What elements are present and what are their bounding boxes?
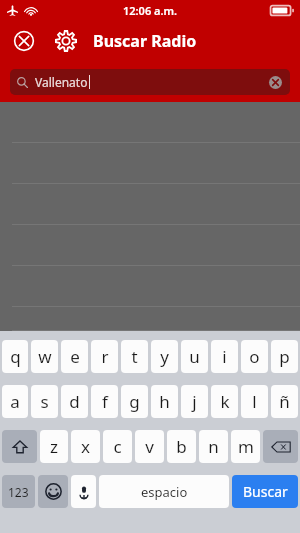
staticText: Buscar Radio — [93, 30, 197, 52]
button[interactable]: f — [91, 385, 118, 418]
staticText: s — [40, 390, 49, 413]
staticText: t — [131, 345, 138, 368]
button[interactable]: Dictation — [71, 475, 96, 508]
button[interactable]: o — [241, 340, 268, 373]
staticText: Buscar — [243, 482, 288, 501]
button[interactable]: m — [231, 430, 260, 463]
button[interactable]: Buscar — [232, 475, 298, 508]
button[interactable] — [0, 307, 300, 331]
staticText: m — [238, 435, 254, 458]
button[interactable]: Settings — [50, 25, 82, 57]
button[interactable]: Shift — [2, 430, 37, 463]
button[interactable]: z — [40, 430, 68, 463]
staticText: q — [10, 345, 21, 368]
staticText: 123 — [8, 484, 29, 500]
button[interactable]: Backspace — [263, 430, 298, 463]
button[interactable]: v — [135, 430, 164, 463]
staticText: p — [279, 345, 290, 368]
staticText: r — [101, 345, 109, 368]
button[interactable]: g — [121, 385, 148, 418]
staticText: k — [220, 390, 230, 413]
staticText: o — [249, 345, 260, 368]
staticText: ñ — [279, 390, 290, 413]
staticText: l — [252, 390, 257, 413]
staticText: h — [159, 390, 170, 413]
button[interactable]: x — [71, 430, 100, 463]
button[interactable]: p — [271, 340, 298, 373]
button[interactable]: b — [167, 430, 196, 463]
staticText: e — [70, 345, 80, 368]
button[interactable]: k — [211, 385, 238, 418]
staticText: x — [81, 435, 90, 458]
staticText: espacio — [141, 483, 188, 501]
button[interactable]: d — [61, 385, 88, 418]
button[interactable]: q — [2, 340, 28, 373]
staticText: n — [208, 435, 219, 458]
staticText: Vallenato — [35, 74, 88, 90]
staticText: 12:06 a.m. — [123, 3, 178, 18]
staticText: g — [129, 390, 140, 413]
button[interactable]: e — [61, 340, 88, 373]
button[interactable]: i — [211, 340, 238, 373]
staticText: c — [113, 435, 122, 458]
staticText: y — [160, 345, 169, 368]
staticText: v — [145, 435, 154, 458]
button[interactable]: c — [103, 430, 132, 463]
staticText: z — [50, 435, 58, 458]
button[interactable]: y — [151, 340, 178, 373]
button[interactable]: Clear text — [264, 71, 286, 93]
button[interactable]: n — [199, 430, 228, 463]
button[interactable]: l — [241, 385, 268, 418]
button[interactable]: s — [31, 385, 58, 418]
button[interactable]: j — [181, 385, 208, 418]
staticText: w — [38, 345, 52, 368]
staticText: a — [10, 390, 20, 413]
button[interactable]: espacio — [99, 475, 229, 508]
button[interactable]: Vallenato — [10, 69, 290, 95]
staticText: j — [192, 390, 197, 413]
button[interactable]: u — [181, 340, 208, 373]
staticText: d — [69, 390, 80, 413]
button[interactable]: a — [2, 385, 28, 418]
staticText: i — [222, 345, 227, 368]
button[interactable]: ñ — [271, 385, 298, 418]
button[interactable]: t — [121, 340, 148, 373]
button[interactable]: h — [151, 385, 178, 418]
staticText: f — [102, 390, 108, 413]
button[interactable]: Emoji — [38, 475, 68, 508]
button[interactable]: Numbers — [2, 475, 35, 508]
button[interactable]: Close — [8, 25, 40, 57]
staticText: b — [176, 435, 187, 458]
button[interactable]: w — [31, 340, 58, 373]
button[interactable]: r — [91, 340, 118, 373]
staticText: u — [189, 345, 200, 368]
